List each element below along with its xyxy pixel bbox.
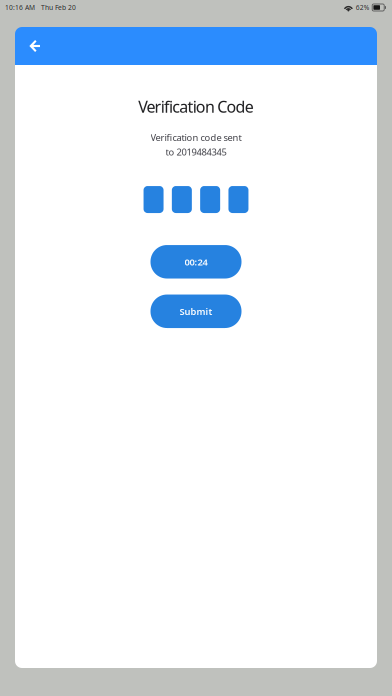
staticText: to 2019484345 [165, 146, 226, 158]
staticText: Verification Code [138, 96, 254, 117]
staticText: 00:24 [184, 256, 207, 268]
button[interactable]: Code digit [200, 186, 220, 213]
button[interactable]: Submit [150, 294, 241, 328]
button[interactable]: Code digit [228, 186, 248, 213]
staticText: Verification code sent [150, 131, 241, 144]
button[interactable]: 00:24 [150, 245, 241, 278]
staticText: 10:16 AM [5, 3, 35, 12]
staticText: 62% [356, 3, 370, 12]
button[interactable]: Code digit [144, 186, 164, 213]
button[interactable]: Back [15, 27, 50, 65]
staticText: Submit [179, 305, 212, 317]
staticText: Thu Feb 20 [41, 3, 76, 12]
button[interactable]: Code digit [172, 186, 192, 213]
